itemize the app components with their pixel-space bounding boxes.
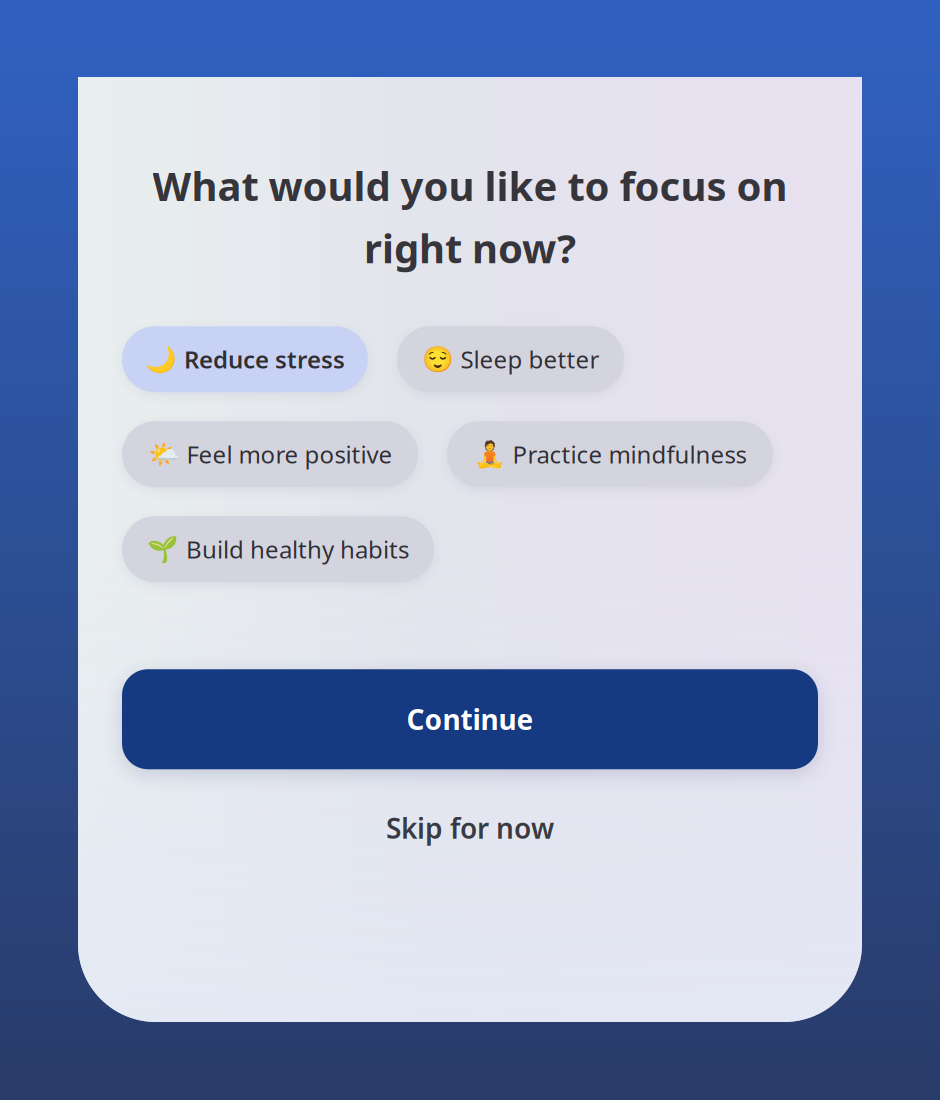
staticText: Sleep better xyxy=(460,343,599,375)
button[interactable]: 🌱 xyxy=(122,516,434,582)
button[interactable]: 🌙 xyxy=(122,326,368,392)
button[interactable]: 🌤️ xyxy=(122,421,418,487)
staticText: Skip for now xyxy=(386,809,554,846)
staticText: Feel more positive xyxy=(186,438,392,470)
button[interactable]: Continue xyxy=(122,669,818,769)
staticText: Practice mindfulness xyxy=(512,438,746,470)
staticText: 🌙 xyxy=(145,345,177,374)
button[interactable]: 😌 xyxy=(397,326,624,392)
staticText: Build healthy habits xyxy=(186,533,409,565)
staticText: 🌱 xyxy=(147,535,179,564)
staticText: 😌 xyxy=(421,345,453,374)
staticText: right now? xyxy=(364,221,576,274)
staticText: 🌤️ xyxy=(147,440,179,469)
button[interactable]: 🧘 xyxy=(447,421,773,487)
staticText: 🧘 xyxy=(473,440,505,469)
staticText: Reduce stress xyxy=(184,343,345,375)
staticText: Continue xyxy=(406,701,533,738)
button[interactable]: Skip for now xyxy=(360,797,580,858)
staticText: What would you like to focus on xyxy=(152,159,787,212)
